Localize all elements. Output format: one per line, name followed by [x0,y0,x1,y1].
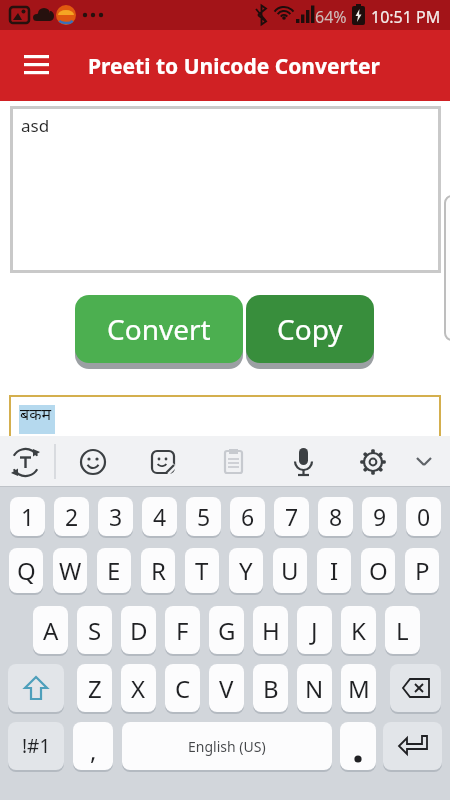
button[interactable]: , [73,722,113,770]
button[interactable]: N [297,664,332,712]
button[interactable]: 0 [406,497,441,536]
staticText: K [351,614,366,647]
button[interactable] [71,440,115,484]
button[interactable]: F [165,606,200,654]
button[interactable]: L [385,606,420,654]
button[interactable]: 2 [54,497,89,536]
staticText: U [281,554,299,587]
button[interactable]: M [341,664,376,712]
button[interactable]: Copy [246,295,374,363]
button[interactable]: Z [77,664,112,712]
staticText: G [218,614,236,647]
button[interactable]: S [77,606,112,654]
button[interactable] [402,440,446,484]
staticText: 7 [285,501,299,532]
staticText: A [43,614,59,647]
button[interactable]: बकम [9,395,441,436]
button[interactable]: Convert [75,295,243,363]
staticText: I [330,554,339,587]
button[interactable]: B [253,664,288,712]
staticText: !#1 [22,733,51,759]
staticText: F [176,614,189,647]
button[interactable]: 5 [186,497,221,536]
button[interactable]: 8 [318,497,353,536]
button[interactable]: 1 [10,497,45,536]
button[interactable] [390,664,441,712]
button[interactable] [8,664,64,712]
button[interactable]: P [405,548,439,593]
button[interactable]: K [341,606,376,654]
button[interactable]: V [209,664,244,712]
staticText: 0 [417,501,431,532]
staticText: 64% [315,6,347,28]
staticText: C [175,672,191,705]
staticText: L [396,614,409,647]
button[interactable]: E [97,548,131,593]
staticText: B [263,672,279,705]
staticText: , [90,734,97,767]
staticText: O [369,554,388,587]
staticText: Convert [107,310,211,348]
staticText: 9 [373,501,387,532]
button[interactable]: J [297,606,332,654]
staticText: बकम [20,403,51,425]
button[interactable] [141,440,185,484]
button[interactable] [351,440,395,484]
button[interactable]: O [361,548,395,593]
button[interactable]: W [53,548,87,593]
button[interactable]: asd [10,106,441,273]
staticText: 1 [21,501,35,532]
staticText: English (US) [188,737,266,756]
staticText: W [59,554,82,587]
staticText: X [131,672,146,705]
button[interactable]: T [185,548,219,593]
staticText: N [305,672,324,705]
button[interactable]: Y [229,548,263,593]
button[interactable]: D [121,606,156,654]
button[interactable] [211,440,255,484]
button[interactable] [383,722,442,770]
button[interactable] [24,30,52,101]
button[interactable]: !#1 [8,722,64,770]
button[interactable] [281,440,325,484]
button[interactable]: R [141,548,175,593]
staticText: E [107,554,121,587]
staticText: 5 [197,501,211,532]
button[interactable]: H [253,606,288,654]
staticText: T [195,554,209,587]
button[interactable]: 6 [230,497,265,536]
staticText: 10:51 PM [371,6,441,28]
button[interactable]: Q [9,548,43,593]
button[interactable]: 4 [142,497,177,536]
staticText: Q [17,554,36,587]
staticText: H [262,614,280,647]
staticText: J [311,614,318,647]
button[interactable]: 9 [362,497,397,536]
button[interactable]: X [121,664,156,712]
staticText: P [415,554,430,587]
staticText: D [130,614,148,647]
staticText: Y [239,554,253,587]
staticText: 6 [241,501,255,532]
button[interactable] [6,440,50,484]
staticText: 3 [109,501,123,532]
staticText: R [151,554,166,587]
staticText: asd [21,114,50,137]
button[interactable]: C [165,664,200,712]
staticText: Preeti to Unicode Converter [88,52,380,81]
button[interactable]: A [33,606,68,654]
staticText: V [219,672,234,705]
staticText: Z [88,672,102,705]
button[interactable]: I [317,548,351,593]
staticText: 8 [329,501,343,532]
staticText: Copy [277,310,343,348]
button[interactable]: 7 [274,497,309,536]
button[interactable]: English (US) [122,722,332,770]
button[interactable]: U [273,548,307,593]
staticText: 4 [153,501,167,532]
button[interactable]: 3 [98,497,133,536]
staticText: M [348,672,370,705]
button[interactable] [340,722,376,770]
staticText: 2 [65,501,79,532]
button[interactable]: G [209,606,244,654]
